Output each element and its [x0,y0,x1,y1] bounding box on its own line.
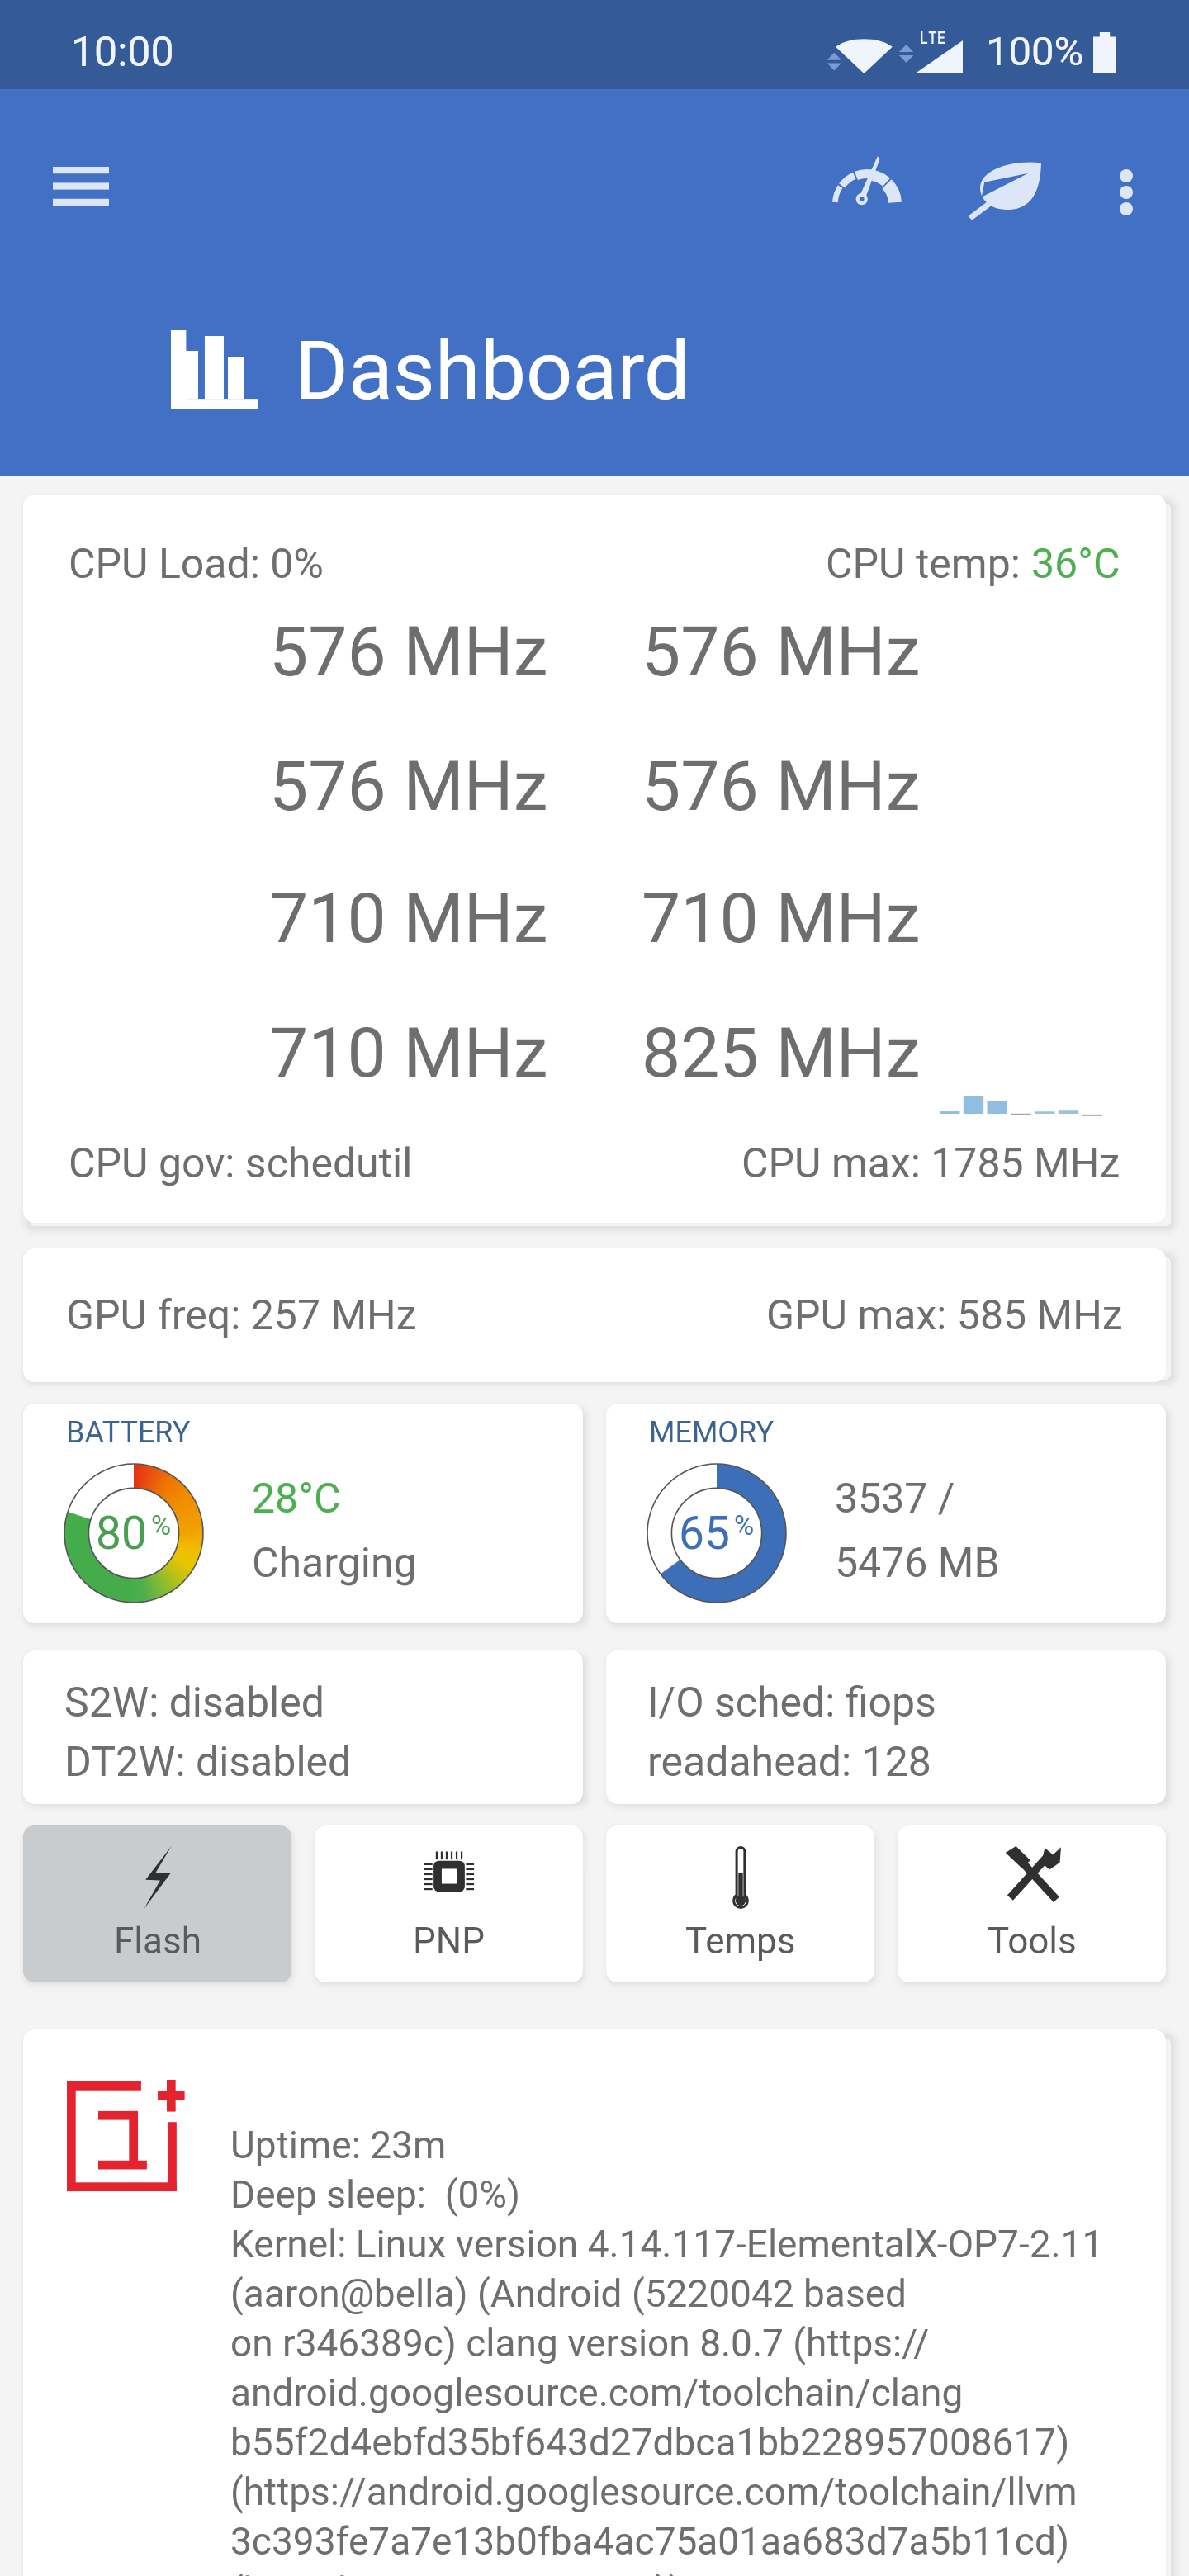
staticText: 576 MHz [269,746,548,826]
button[interactable]: I/O sched: fiops [606,1650,1166,1804]
button[interactable]: PNP [315,1825,583,1982]
staticText: 576 MHz [269,611,548,692]
staticText: readahead: 128 [647,1738,931,1787]
staticText: Dashboard [295,323,690,419]
staticText: 10:00 [71,28,174,77]
staticText: 710 MHz [269,878,548,959]
staticText: % [151,1509,172,1541]
staticText: CPU gov: schedutil [69,1139,413,1188]
staticText: Flash [114,1920,201,1963]
staticText: DT2W: disabled [64,1738,352,1787]
button[interactable]: CPU Load: 0% [23,495,1166,1223]
staticText: 710 MHz [642,878,921,959]
staticText: 36°C [1031,540,1120,589]
button[interactable]: Tools [898,1825,1166,1982]
staticText: Temps [685,1920,796,1963]
staticText: 3537 / [835,1475,955,1523]
staticText: 825 MHz [642,1012,921,1093]
staticText: Uptime: 23m Deep sleep: (0%) Kernel: Lin… [230,2123,1104,2576]
staticText: Tools [988,1920,1077,1963]
button[interactable]: Temps [606,1825,874,1982]
staticText: 80 [96,1507,147,1560]
staticText: 65 [679,1507,730,1560]
staticText: CPU temp: [826,540,1031,589]
staticText: 5476 MB [835,1539,1000,1588]
button[interactable]: MEMORY [606,1404,1166,1623]
staticText: 576 MHz [642,746,921,826]
staticText: CPU Load: 0% [69,540,324,589]
button[interactable]: More options [1067,133,1186,252]
staticText: GPU max: 585 MHz [766,1291,1123,1340]
button[interactable]: S2W: disabled [23,1650,583,1804]
staticText: MEMORY [649,1415,775,1450]
staticText: BATTERY [66,1415,191,1450]
staticText: Charging [252,1539,417,1588]
button[interactable]: Benchmark [808,120,926,239]
staticText: S2W: disabled [64,1679,324,1727]
button[interactable]: BATTERY [23,1404,583,1623]
staticText: 100% [986,28,1084,75]
button[interactable]: GPU freq: 257 MHz [23,1248,1166,1382]
button[interactable]: Uptime: 23m Deep sleep: (0%) Kernel: Lin… [23,2029,1166,2576]
staticText: % [734,1509,755,1541]
staticText: PNP [413,1920,485,1963]
button[interactable]: Open navigation drawer [21,126,140,245]
button[interactable]: Flash [23,1825,291,1982]
staticText: 576 MHz [642,611,921,692]
staticText: GPU freq: 257 MHz [66,1291,417,1340]
staticText: CPU max: 1785 MHz [741,1139,1120,1188]
staticText: 28°C [252,1475,341,1523]
staticText: I/O sched: fiops [647,1679,936,1727]
button[interactable]: Battery saver mode [945,130,1064,249]
staticText: 710 MHz [269,1012,548,1093]
